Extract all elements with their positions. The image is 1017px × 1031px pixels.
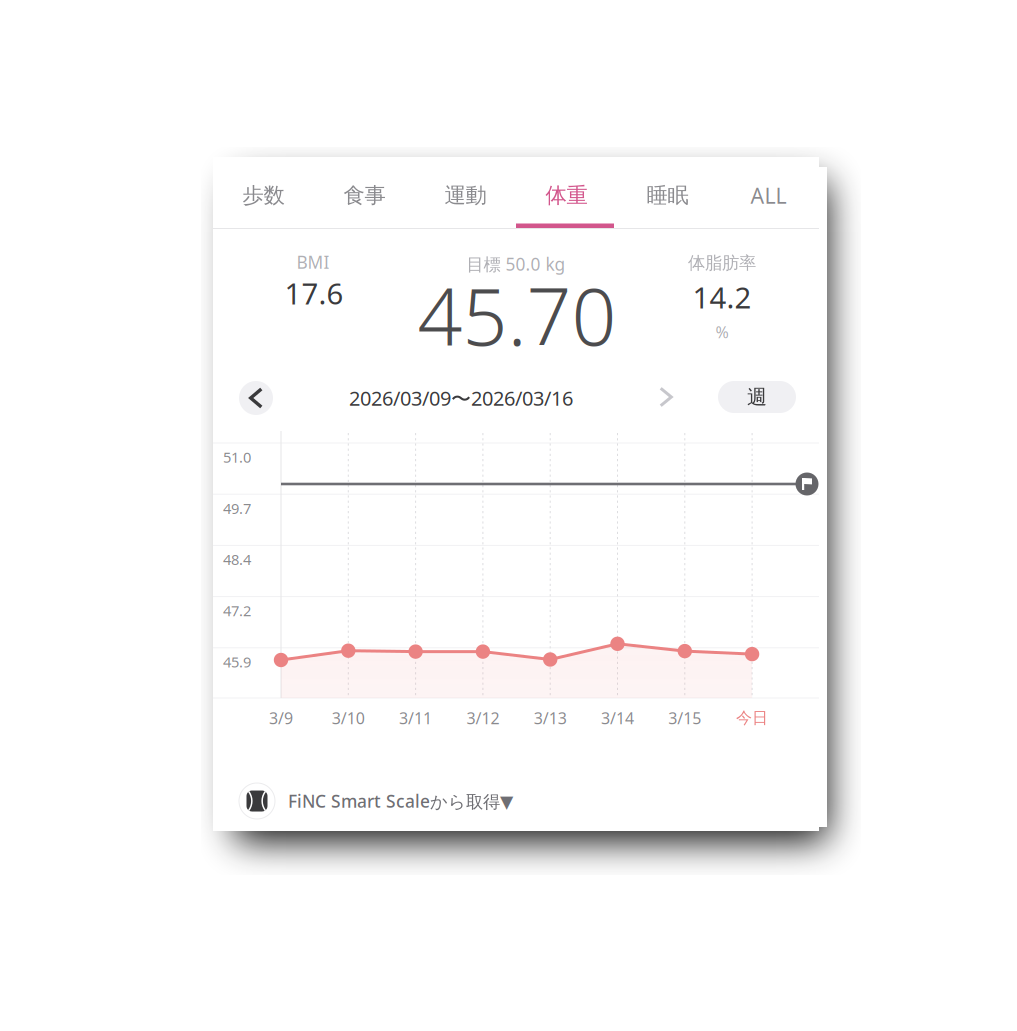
staticText: 今日 (736, 708, 768, 728)
staticText: 体重 (545, 182, 587, 209)
staticText: 3/11 (399, 707, 432, 729)
staticText: 3/14 (601, 707, 634, 729)
staticText: 歩数 (242, 182, 284, 209)
staticText: 45.9 (223, 652, 251, 672)
button[interactable]: ALL (718, 160, 819, 231)
button[interactable]: 睡眠 (617, 160, 718, 231)
staticText: 3/12 (466, 707, 499, 729)
button[interactable]: 前の期間 (239, 381, 273, 415)
button[interactable]: FiNC Smart Scaleから取得▼ (239, 783, 513, 819)
staticText: ALL (750, 181, 786, 210)
staticText: BMI (296, 250, 329, 273)
staticText: 49.7 (223, 498, 251, 518)
button[interactable]: 食事 (314, 160, 415, 231)
staticText: 51.0 (223, 447, 251, 467)
staticText: 睡眠 (646, 182, 688, 209)
staticText: 運動 (444, 182, 486, 209)
staticText: 週 (747, 385, 767, 409)
staticText: 17.6 (284, 273, 343, 312)
staticText: 2026/03/09〜2026/03/16 (349, 385, 573, 411)
staticText: 目標 50.0 kg (466, 252, 565, 275)
button[interactable]: 運動 (415, 160, 516, 231)
staticText: 45.70 (417, 263, 616, 367)
staticText: 3/9 (269, 707, 293, 729)
staticText: 14.2 (692, 277, 751, 316)
button[interactable]: 体重 (516, 160, 617, 231)
staticText: FiNC Smart Scaleから取得▼ (288, 789, 513, 812)
staticText: 体脂肪率 (688, 252, 756, 274)
button[interactable]: 週 (718, 381, 796, 413)
staticText: 48.4 (223, 550, 251, 569)
button[interactable]: 歩数 (213, 160, 314, 231)
staticText: 47.2 (223, 601, 251, 620)
staticText: 3/13 (534, 707, 567, 729)
staticText: % (715, 321, 728, 343)
button[interactable]: 次の期間 (649, 380, 683, 414)
staticText: 食事 (343, 182, 385, 209)
staticText: 3/10 (332, 707, 365, 729)
staticText: 3/15 (668, 707, 701, 729)
